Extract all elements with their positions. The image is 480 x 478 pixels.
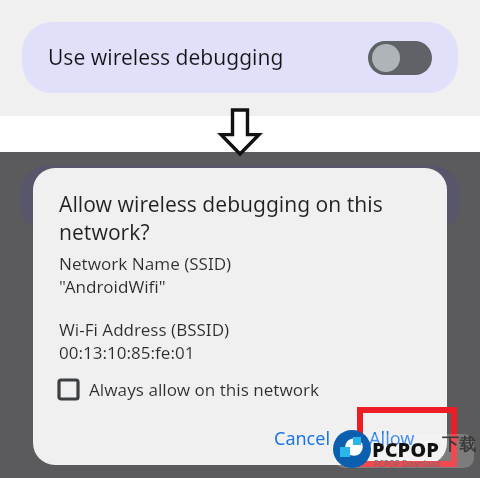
staticText: Always allow on this network <box>89 378 320 401</box>
button[interactable]: Use wireless debugging toggle <box>368 41 432 75</box>
button[interactable]: Cancel <box>266 420 339 457</box>
staticText: Allow <box>369 426 415 451</box>
staticText: PCPOP <box>372 436 439 463</box>
staticText: Cancel <box>274 426 331 451</box>
staticText: Allow wireless debugging on this network… <box>59 190 427 246</box>
button[interactable]: Allow <box>361 420 423 457</box>
button[interactable]: Use wireless debugging <box>22 22 458 93</box>
staticText: Wi-Fi Address (BSSID) <box>59 318 230 341</box>
staticText: Use wireless debugging <box>48 43 284 72</box>
staticText: 下载 <box>442 434 476 455</box>
staticText: 00:13:10:85:fe:01 <box>59 341 195 364</box>
staticText: Network Name (SSID) <box>59 252 232 275</box>
button[interactable]: Always allow on this network <box>59 376 320 403</box>
staticText: "AndroidWifi" <box>59 275 166 298</box>
staticText: PCPOP Download <box>374 458 440 469</box>
